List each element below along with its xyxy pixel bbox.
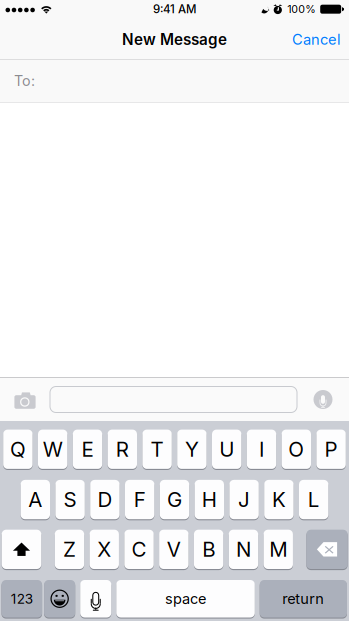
staticText: W xyxy=(43,437,63,462)
staticText: 100% xyxy=(287,2,315,15)
staticText: Z xyxy=(63,537,76,562)
staticText: V xyxy=(167,537,181,562)
staticText: A xyxy=(28,487,42,512)
staticText: Y xyxy=(185,437,199,462)
staticText: return xyxy=(282,590,324,608)
button[interactable]: Dictate xyxy=(297,378,349,421)
staticText: C xyxy=(132,537,147,562)
staticText: U xyxy=(219,437,234,462)
staticText: R xyxy=(116,437,129,462)
button[interactable]: S xyxy=(55,480,85,519)
button[interactable]: space xyxy=(116,580,255,617)
staticText: Q xyxy=(10,437,26,462)
button[interactable]: Numbers xyxy=(1,580,42,617)
button[interactable]: Q xyxy=(3,430,33,469)
staticText: J xyxy=(238,487,250,512)
staticText: New Message xyxy=(122,30,227,49)
button[interactable]: J xyxy=(229,480,259,519)
button[interactable]: Shift xyxy=(2,530,41,569)
staticText: Cancel xyxy=(292,31,341,48)
staticText: I xyxy=(259,437,264,462)
staticText: L xyxy=(308,487,320,512)
button[interactable]: W xyxy=(38,430,67,469)
staticText: B xyxy=(202,537,215,562)
staticText: G xyxy=(167,487,182,512)
button[interactable]: G xyxy=(160,480,189,519)
button[interactable]: F xyxy=(125,480,154,519)
staticText: space xyxy=(165,590,206,608)
button[interactable]: Cancel xyxy=(284,23,349,56)
button[interactable]: D xyxy=(90,480,120,519)
button[interactable]: Take photo xyxy=(0,378,50,421)
button[interactable]: H xyxy=(195,480,224,519)
button[interactable]: M xyxy=(264,530,293,569)
staticText: F xyxy=(134,487,146,512)
staticText: M xyxy=(269,537,287,562)
staticText: K xyxy=(272,487,286,512)
staticText: 9:41 AM xyxy=(153,2,196,16)
button[interactable]: X xyxy=(90,530,119,569)
button[interactable]: R xyxy=(108,430,137,469)
button[interactable]: Emoji xyxy=(44,580,75,617)
staticText: O xyxy=(288,437,304,462)
staticText: E xyxy=(81,437,93,462)
button[interactable]: O xyxy=(282,430,311,469)
button[interactable]: T xyxy=(142,430,172,469)
button[interactable]: E xyxy=(73,430,102,469)
button[interactable]: Dictate xyxy=(80,580,111,617)
staticText: T xyxy=(151,437,164,462)
button[interactable]: V xyxy=(159,530,189,569)
staticText: H xyxy=(202,487,217,512)
button[interactable]: K xyxy=(264,480,294,519)
button[interactable]: Y xyxy=(177,430,207,469)
staticText: D xyxy=(97,487,112,512)
button[interactable]: return xyxy=(260,580,347,617)
staticText: N xyxy=(236,537,251,562)
button[interactable]: N xyxy=(229,530,258,569)
button[interactable]: I xyxy=(247,430,276,469)
staticText: 123 xyxy=(11,590,33,607)
button[interactable]: U xyxy=(212,430,241,469)
staticText: S xyxy=(64,487,77,512)
staticText: To: xyxy=(14,72,35,89)
button[interactable]: L xyxy=(299,480,328,519)
staticText: P xyxy=(325,437,338,462)
button[interactable]: C xyxy=(124,530,154,569)
button[interactable]: Z xyxy=(55,530,84,569)
button[interactable]: A xyxy=(21,480,50,519)
button[interactable]: Delete xyxy=(306,530,348,569)
button[interactable]: P xyxy=(316,430,346,469)
staticText: X xyxy=(97,537,111,562)
button[interactable]: B xyxy=(194,530,223,569)
